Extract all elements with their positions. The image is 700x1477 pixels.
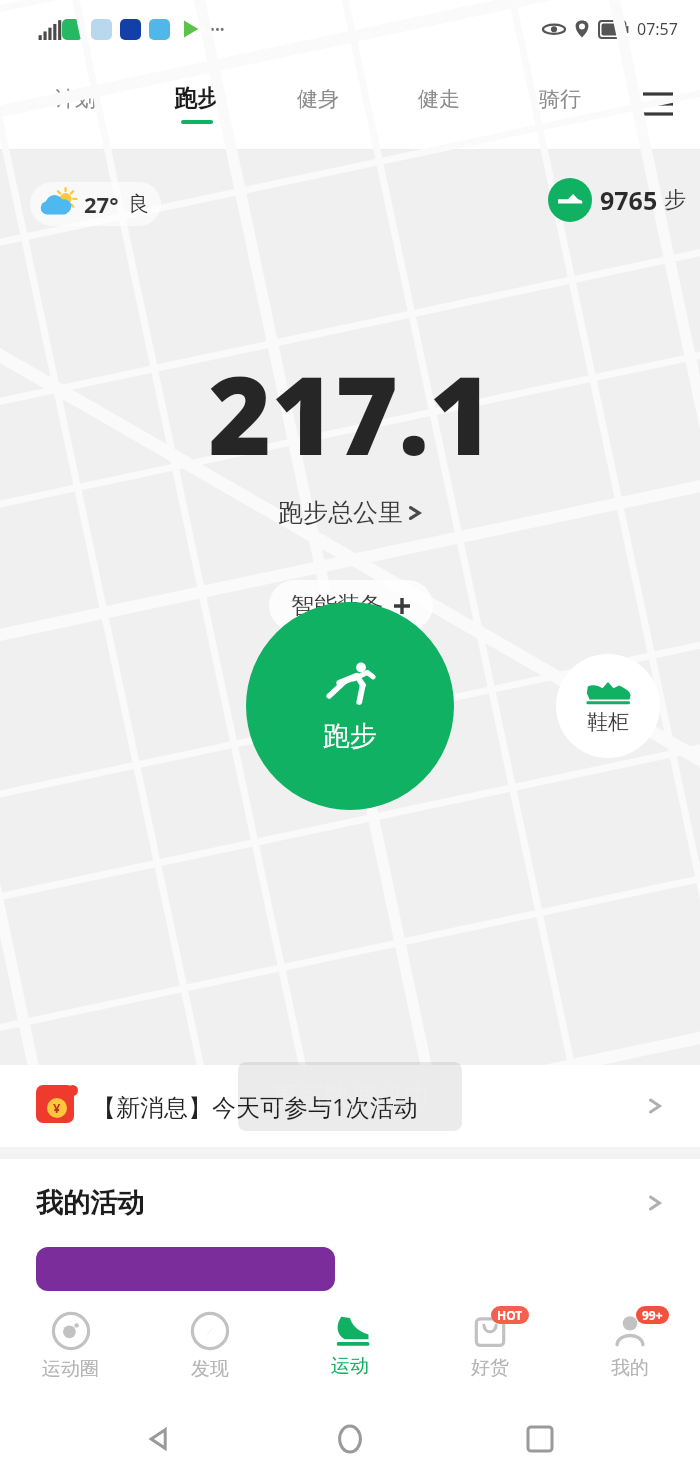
staticText: 99+ — [642, 1307, 663, 1323]
staticText: 运动 — [331, 1354, 369, 1378]
staticText: 跑步 — [174, 84, 220, 113]
staticText: 运动圈 — [42, 1357, 99, 1381]
button[interactable]: 运动圈 — [0, 1291, 140, 1401]
button[interactable]: 健身 — [257, 58, 378, 150]
staticText: 07:57 — [637, 18, 678, 40]
button[interactable]: 9765 — [548, 178, 686, 222]
button[interactable]: 计划 — [14, 58, 136, 150]
staticText: 计划 — [54, 86, 96, 112]
staticText: 【新消息】今天可参与1次活动 — [92, 1090, 418, 1123]
staticText: ¥ — [53, 1099, 61, 1117]
button[interactable]: 鞋柜 — [556, 654, 660, 758]
button[interactable]: Recents — [510, 1409, 570, 1469]
staticText: 更新数据成功 — [272, 1080, 428, 1113]
button[interactable]: 99+ — [560, 1291, 700, 1401]
staticText: 好货 — [471, 1356, 509, 1380]
button[interactable]: 跑步 — [246, 602, 454, 810]
staticText: 我的 — [611, 1356, 649, 1380]
staticText: 发现 — [191, 1357, 229, 1381]
button[interactable]: 健走 — [378, 58, 499, 150]
button[interactable]: Back — [130, 1409, 190, 1469]
staticText: HOT — [497, 1307, 523, 1323]
button[interactable]: Menu — [620, 58, 696, 150]
staticText: 良 — [128, 191, 149, 217]
staticText: 智能装备 — [291, 591, 383, 620]
button[interactable]: 运动 — [280, 1291, 420, 1401]
staticText: 鞋柜 — [587, 709, 629, 735]
staticText: 跑步总公里 — [278, 497, 403, 528]
button[interactable]: 跑步 — [136, 58, 257, 150]
button[interactable]: 我的活动 — [0, 1159, 700, 1247]
staticText: 健走 — [418, 86, 460, 112]
button[interactable]: ¥ — [0, 1065, 700, 1147]
staticText: 9765 — [600, 183, 658, 217]
staticText: 我的活动 — [36, 1186, 144, 1220]
staticText: 健身 — [297, 86, 339, 112]
button[interactable]: 骑行 — [499, 58, 620, 150]
staticText: 217.1 — [208, 340, 493, 487]
button[interactable]: 跑步总公里 — [278, 497, 423, 528]
staticText: ••• — [210, 20, 225, 38]
button[interactable]: 发现 — [140, 1291, 280, 1401]
button[interactable]: 27° — [30, 182, 161, 226]
staticText: 27° — [84, 189, 119, 219]
staticText: 骑行 — [539, 86, 581, 112]
button[interactable]: 智能装备 — [269, 580, 433, 631]
button[interactable]: HOT — [420, 1291, 560, 1401]
button[interactable]: Home — [320, 1409, 380, 1469]
staticText: 跑步 — [323, 719, 377, 753]
staticText: 步 — [664, 186, 686, 214]
